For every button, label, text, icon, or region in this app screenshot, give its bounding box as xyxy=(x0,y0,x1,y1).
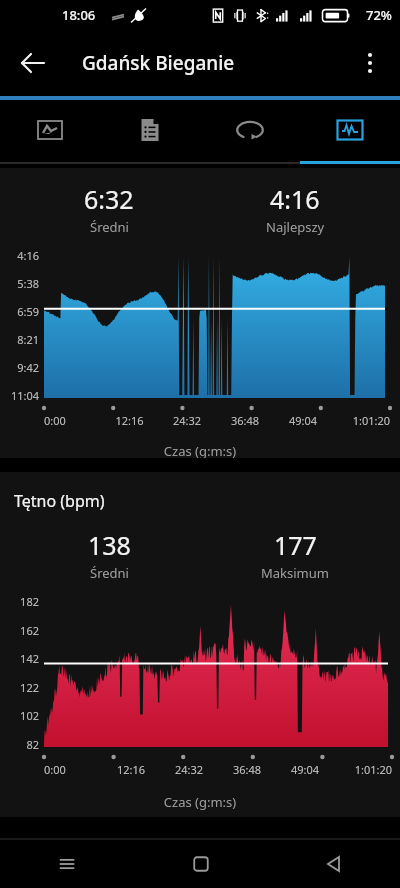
staticText: 82 xyxy=(0,737,39,752)
button[interactable]: More options xyxy=(348,41,392,85)
staticText: 9:42 xyxy=(0,360,39,375)
staticText: 6:59 xyxy=(0,304,39,319)
staticText: 12:16 xyxy=(102,762,160,777)
staticText: Tętno (bpm) xyxy=(14,490,105,512)
button[interactable]: Back xyxy=(267,840,400,888)
staticText: 24:32 xyxy=(158,413,216,428)
staticText: Średni xyxy=(90,564,129,582)
button[interactable]: Recent apps xyxy=(0,840,134,888)
staticText: Czas (g:m:s) xyxy=(0,793,400,811)
staticText: Gdańsk Bieganie xyxy=(82,50,235,76)
staticText: 12:16 xyxy=(101,413,158,428)
staticText: 24:32 xyxy=(160,762,218,777)
button[interactable]: Map xyxy=(0,100,100,164)
staticText: 49:04 xyxy=(274,413,332,428)
staticText: 1:01:20 xyxy=(334,762,392,777)
staticText: 6:32 xyxy=(84,182,134,216)
button[interactable]: Charts xyxy=(300,100,400,164)
staticText: 11:04 xyxy=(0,388,39,403)
button[interactable]: Details xyxy=(100,100,200,164)
staticText: 182 xyxy=(0,594,39,609)
staticText: 49:04 xyxy=(276,762,334,777)
staticText: 8:21 xyxy=(0,332,39,347)
staticText: Maksimum xyxy=(261,564,329,582)
button[interactable]: Home xyxy=(134,840,267,888)
staticText: 177 xyxy=(274,528,317,562)
staticText: 162 xyxy=(0,623,39,638)
staticText: Średni xyxy=(90,218,129,236)
staticText: 138 xyxy=(88,528,131,562)
staticText: 142 xyxy=(0,651,39,666)
staticText: 72% xyxy=(366,6,392,24)
staticText: 0:00 xyxy=(44,762,102,777)
staticText: 4:16 xyxy=(0,248,39,263)
staticText: 36:48 xyxy=(218,762,276,777)
staticText: 4:16 xyxy=(270,182,320,216)
button[interactable]: Laps xyxy=(200,100,300,164)
staticText: 36:48 xyxy=(216,413,274,428)
staticText: 1:01:20 xyxy=(332,413,390,428)
staticText: 0:00 xyxy=(44,413,101,428)
staticText: 102 xyxy=(0,708,39,723)
staticText: Najlepszy xyxy=(266,218,325,236)
staticText: Czas (g:m:s) xyxy=(0,442,400,458)
staticText: 122 xyxy=(0,680,39,695)
staticText: 5:38 xyxy=(0,276,39,291)
button[interactable]: Back xyxy=(10,40,56,86)
staticText: 18:06 xyxy=(62,6,96,24)
